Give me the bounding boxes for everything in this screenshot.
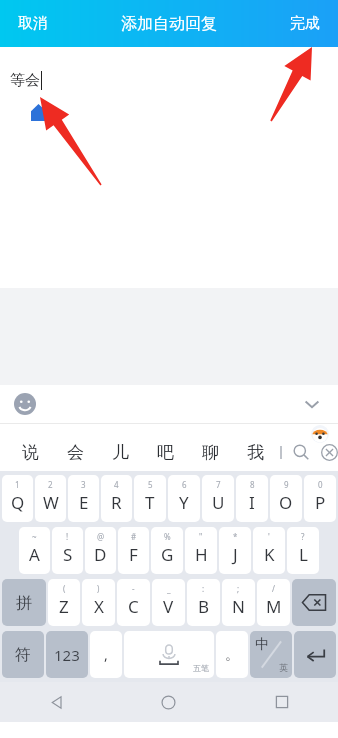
- button[interactable]: ': [253, 527, 285, 574]
- staticText: M: [266, 595, 282, 618]
- staticText: H: [195, 543, 208, 566]
- button[interactable]: 1: [2, 475, 33, 522]
- staticText: (: [63, 583, 66, 594]
- button[interactable]: ;: [222, 579, 255, 626]
- staticText: *: [233, 531, 238, 542]
- staticText: E: [79, 491, 89, 514]
- staticText: 等会: [10, 71, 40, 90]
- button[interactable]: Hide keyboard: [296, 388, 328, 420]
- staticText: 符: [15, 645, 31, 665]
- button[interactable]: 2: [35, 475, 66, 522]
- staticText: J: [233, 543, 238, 566]
- button[interactable]: Home: [112, 682, 225, 722]
- button[interactable]: *: [219, 527, 251, 574]
- button[interactable]: :: [187, 579, 220, 626]
- button[interactable]: 完成: [278, 6, 332, 41]
- button[interactable]: @: [85, 527, 116, 574]
- button[interactable]: (: [48, 579, 80, 626]
- staticText: 英: [279, 662, 288, 673]
- button[interactable]: Switch Chinese English: [250, 631, 292, 678]
- staticText: ': [268, 531, 270, 542]
- button[interactable]: 等会: [0, 47, 338, 288]
- button[interactable]: Enter: [294, 631, 336, 678]
- button[interactable]: 5: [134, 475, 166, 522]
- staticText: I: [249, 491, 255, 514]
- button[interactable]: 9: [270, 475, 302, 522]
- staticText: 拼: [16, 593, 32, 613]
- button[interactable]: ": [185, 527, 217, 574]
- button[interactable]: /: [257, 579, 290, 626]
- button[interactable]: Close panel: [320, 439, 338, 465]
- staticText: :: [202, 583, 205, 594]
- staticText: 2: [48, 479, 53, 490]
- button[interactable]: Space: [124, 631, 214, 678]
- button[interactable]: 8: [236, 475, 268, 522]
- button[interactable]: #: [118, 527, 149, 574]
- staticText: 9: [284, 479, 289, 490]
- button[interactable]: 符: [2, 631, 44, 678]
- staticText: 会: [67, 442, 84, 463]
- staticText: V: [163, 595, 174, 618]
- other: IME logo: [311, 425, 329, 443]
- staticText: 。: [225, 646, 239, 664]
- button[interactable]: !: [52, 527, 83, 574]
- staticText: N: [232, 595, 245, 618]
- staticText: _: [167, 583, 171, 594]
- button[interactable]: 。: [216, 631, 248, 678]
- staticText: T: [145, 491, 155, 514]
- staticText: 7: [216, 479, 221, 490]
- staticText: 说: [22, 442, 39, 463]
- staticText: 3: [81, 479, 86, 490]
- button[interactable]: 7: [202, 475, 234, 522]
- staticText: L: [299, 543, 308, 566]
- button[interactable]: 6: [168, 475, 200, 522]
- staticText: A: [29, 543, 40, 566]
- button[interactable]: 4: [101, 475, 132, 522]
- staticText: 添加自动回复: [121, 14, 217, 34]
- staticText: #: [131, 531, 137, 542]
- button[interactable]: 取消: [6, 6, 60, 41]
- staticText: 123: [54, 645, 80, 665]
- button[interactable]: 会: [53, 437, 98, 467]
- button[interactable]: 0: [304, 475, 336, 522]
- staticText: B: [198, 595, 210, 618]
- staticText: !: [66, 531, 69, 542]
- button[interactable]: Backspace: [292, 579, 336, 626]
- staticText: F: [129, 543, 138, 566]
- staticText: 完成: [290, 14, 320, 33]
- staticText: P: [315, 491, 326, 514]
- staticText: Y: [179, 491, 189, 514]
- button[interactable]: ): [82, 579, 115, 626]
- button[interactable]: ,: [90, 631, 122, 678]
- staticText: U: [212, 491, 225, 514]
- button[interactable]: -: [117, 579, 150, 626]
- button[interactable]: 3: [68, 475, 99, 522]
- button[interactable]: 拼: [2, 579, 46, 626]
- staticText: Z: [59, 595, 69, 618]
- staticText: 5: [148, 479, 153, 490]
- staticText: G: [161, 543, 174, 566]
- staticText: ;: [237, 583, 240, 594]
- button[interactable]: ?: [287, 527, 319, 574]
- button[interactable]: Back: [0, 682, 112, 722]
- staticText: 中: [255, 636, 269, 654]
- staticText: 吧: [157, 442, 174, 463]
- button[interactable]: 说: [8, 437, 53, 467]
- button[interactable]: ~: [19, 527, 50, 574]
- staticText: D: [94, 543, 107, 566]
- button[interactable]: 儿: [98, 437, 143, 467]
- button[interactable]: Emoji: [8, 387, 42, 421]
- staticText: ?: [301, 531, 305, 542]
- staticText: K: [264, 543, 275, 566]
- button[interactable]: 聊: [188, 437, 233, 467]
- staticText: 0: [318, 479, 323, 490]
- button[interactable]: %: [151, 527, 183, 574]
- button[interactable]: 吧: [143, 437, 188, 467]
- button[interactable]: Recents: [225, 682, 338, 722]
- staticText: %: [164, 531, 171, 542]
- button[interactable]: 123: [46, 631, 88, 678]
- staticText: W: [43, 491, 59, 514]
- button[interactable]: _: [152, 579, 185, 626]
- button[interactable]: Search: [288, 439, 314, 465]
- button[interactable]: 我: [233, 437, 278, 467]
